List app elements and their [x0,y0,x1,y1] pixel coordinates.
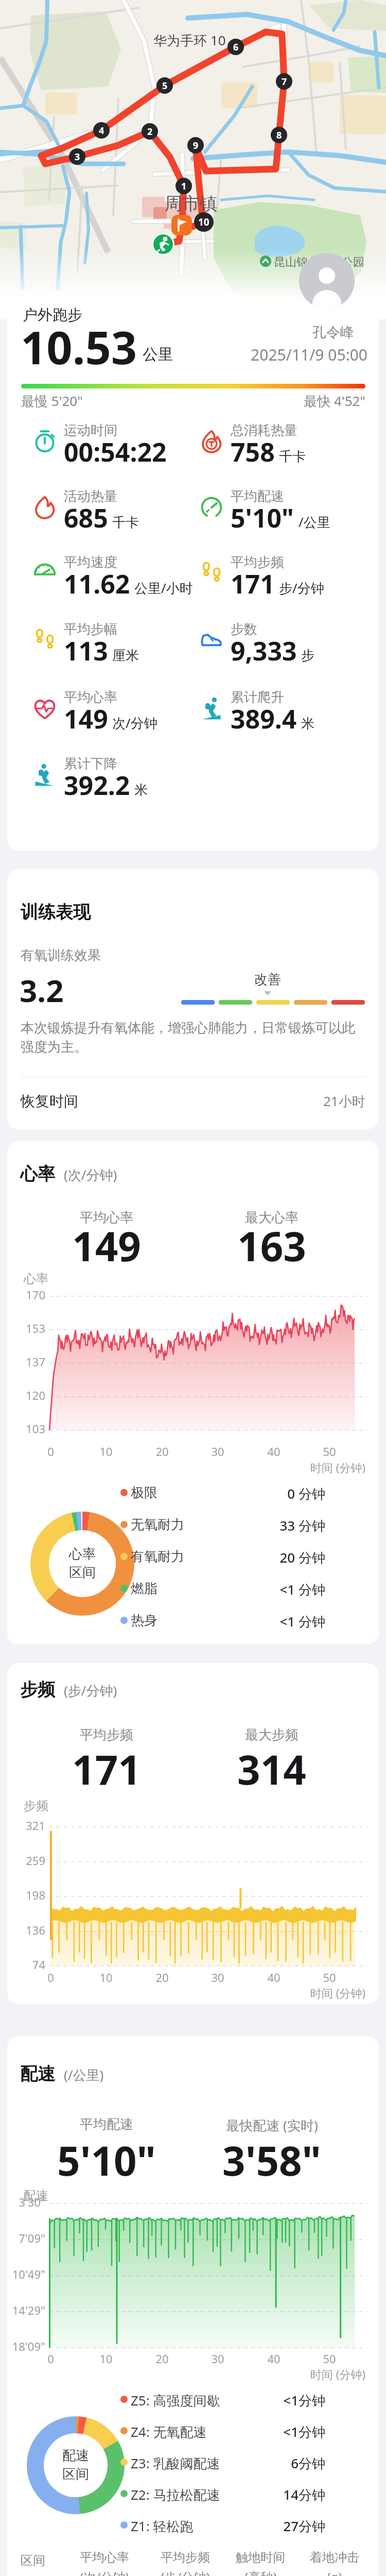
staticText: 137 [26,1354,45,1369]
button[interactable]: 恢复时间 [21,1090,365,1112]
staticText: 3'30" [19,2194,45,2210]
staticText: 10 [99,2351,113,2366]
staticText: 3'58" [222,2133,321,2188]
staticText: 4 [99,124,104,137]
staticText: Z1: 轻松跑 [131,2517,194,2535]
staticText: 120 [26,1387,45,1403]
staticText: 累计爬升 [231,689,284,706]
staticText: 171 [231,566,275,601]
staticText: 103 [26,1421,45,1436]
staticText: 758 [231,434,275,469]
staticText: 时间 (分钟) [310,1985,365,2001]
staticText: (步/分钟) [161,2568,210,2576]
staticText: 30 [211,2351,224,2366]
staticText: 20 分钟 [279,1548,325,1567]
staticText: 136 [26,1922,45,1938]
staticText: 163 [237,1218,306,1273]
staticText: <1 分钟 [279,1580,325,1599]
staticText: 7'09" [19,2230,45,2246]
staticText: 00:54:22 [64,434,167,469]
staticText: (步/分钟) [64,1681,117,1700]
staticText: 30 [211,1444,224,1459]
staticText: Z4: 无氧配速 [131,2422,207,2441]
staticText: Z2: 马拉松配速 [131,2485,220,2504]
staticText: 321 [26,1818,45,1833]
staticText: 总消耗热量 [231,422,297,439]
staticText: 千卡 [112,514,139,531]
staticText: 14分钟 [283,2485,325,2504]
staticText: 113 [64,633,108,668]
staticText: 5 [162,79,168,92]
button[interactable] [181,1000,365,1005]
staticText: 户外跑步 [23,306,82,325]
staticText: 活动热量 [64,488,117,505]
staticText: 厘米 [112,647,139,664]
staticText: 最大心率 [245,1209,299,1226]
staticText: 心率 [69,1546,96,1563]
staticText: 14'29" [12,2302,45,2318]
staticText: 极限 [131,1484,157,1501]
staticText: 40 [267,1444,280,1459]
staticText: 50 [323,1444,336,1459]
staticText: 21小时 [323,1092,365,1110]
staticText: 50 [323,2351,336,2366]
staticText: 步频 [24,1798,48,1814]
staticText: 米 [301,715,314,732]
staticText: 触地时间 [236,2550,285,2565]
staticText: 0 [47,1970,54,1985]
staticText: 10 [198,215,209,229]
staticText: 步频 [20,1679,55,1701]
staticText: 685 [64,500,108,535]
staticText: Z3: 乳酸阈配速 [131,2454,220,2472]
staticText: 40 [267,2351,280,2366]
staticText: 区间 [62,2466,89,2483]
staticText: 有氧耐力 [131,1548,184,1565]
staticText: 热身 [131,1612,157,1629]
staticText: 170 [26,1287,45,1302]
staticText: Z5: 高强度间歇 [131,2391,220,2410]
staticText: 区间 [69,1564,96,1581]
staticText: 训练表现 [21,901,91,923]
staticText: 公里/小时 [134,579,193,597]
staticText: 5'10" [231,500,294,535]
staticText: (毫秒) [244,2568,277,2576]
staticText: 5'10" [57,2133,156,2188]
staticText: 配速 [24,2188,48,2204]
staticText: 20 [155,1970,169,1985]
staticText: 20 [155,1444,169,1459]
staticText: 改善 [254,971,281,988]
staticText: 33 分钟 [279,1516,325,1535]
staticText: 运动时间 [64,422,117,439]
staticText: 平均心率 [80,1209,133,1226]
staticText: 昆山锦华生态公园 [274,255,364,269]
staticText: 0 [47,2351,54,2366]
staticText: 8 [276,129,282,142]
staticText: 步 [301,647,314,664]
staticText: 6分钟 [291,2454,325,2472]
staticText: 3.2 [20,969,64,1011]
button[interactable] [153,234,173,254]
staticText: 累计下降 [64,755,117,772]
staticText: 259 [26,1853,45,1868]
staticText: 周市镇 [165,193,217,215]
staticText: 次/分钟 [112,714,157,732]
staticText: 10'49" [12,2266,45,2282]
staticText: 11.62 [64,566,130,601]
staticText: 平均速度 [64,554,117,571]
staticText: 10.53 [21,316,137,378]
staticText: 0 分钟 [287,1484,325,1503]
staticText: 平均步频 [80,1726,133,1743]
staticText: 时间 (分钟) [310,2366,365,2382]
staticText: 燃脂 [131,1580,157,1597]
staticText: 最快 4'52" [304,392,365,410]
staticText: 本次锻炼提升有氧体能，增强心肺能力，日常锻炼可以此 强度为主。 [21,1020,355,1055]
staticText: 20 [155,2351,169,2366]
staticText: 50 [323,1970,336,1985]
staticText: <1 分钟 [279,1612,325,1631]
staticText: 149 [64,701,108,736]
staticText: 配速 [20,2063,55,2085]
staticText: 2 [147,125,153,138]
staticText: 27分钟 [283,2517,325,2535]
staticText: 2025/11/9 05:00 [251,344,367,365]
staticText: 心率 [24,1271,48,1286]
